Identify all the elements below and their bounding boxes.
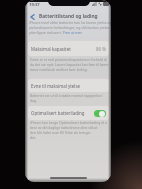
- button[interactable]: Back: [27, 11, 38, 22]
- staticText: Finn ut mer: [63, 30, 82, 35]
- staticText: timer med bruk mellom hver lading.: [30, 67, 88, 72]
- staticText: det.: [30, 135, 37, 140]
- button[interactable]: Optimalisert batterilading: [28, 106, 109, 120]
- staticText: den blir ladet over 80 % før du trenger: [30, 130, 91, 135]
- staticText: Maksimal kapasitet: [31, 46, 71, 52]
- staticText: 19:37: [29, 2, 40, 8]
- staticText: dag.: [30, 98, 37, 103]
- button[interactable]: Maksimal kapasitet: [28, 41, 109, 56]
- staticText: iPhone med eldre batterier kan ha lavere…: [29, 20, 111, 25]
- staticText: 86 %: [96, 46, 106, 52]
- staticText: lære av din daglige ladrutinene dine sli…: [30, 125, 98, 130]
- staticText: ytelsesbaserte forbedringer, og slik bed…: [29, 25, 110, 30]
- staticText: Optimalisert batterilading: [31, 110, 85, 116]
- staticText: Evne til maksimal ytelse: [31, 83, 81, 89]
- staticText: ytterligere redusert.: [29, 30, 63, 35]
- button[interactable]: Evne til maksimal ytelse: [28, 79, 109, 92]
- staticText: iPhone kan bruge Optimalisert batterilad…: [30, 120, 107, 125]
- staticText: Dette er et mål på batterikapasiteten i …: [30, 57, 107, 62]
- staticText: Batteritilstand og lading: [39, 13, 98, 20]
- staticText: Batteriet ser ut til å støtte normal top…: [30, 93, 103, 98]
- staticText: da det var nytt. Lavere kapasitet kan fø…: [30, 62, 109, 67]
